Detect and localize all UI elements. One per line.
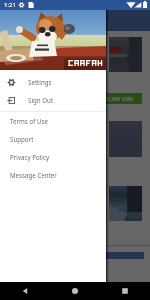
- button[interactable]: SCAN VIN: [8, 93, 142, 104]
- staticText: Terms of Use: [10, 117, 48, 125]
- button[interactable]: [109, 37, 142, 72]
- staticText: Message Center: [10, 171, 57, 179]
- button[interactable]: Settings: [0, 73, 106, 91]
- button[interactable]: [109, 186, 142, 221]
- staticText: 1:21: [4, 1, 16, 9]
- button[interactable]: Terms of Use: [10, 112, 106, 130]
- button[interactable]: Privacy Policy: [10, 148, 106, 166]
- staticText: Sign Out: [28, 96, 54, 104]
- button[interactable]: Home: [50, 282, 100, 300]
- staticText: SCAN VIN: [104, 95, 133, 103]
- button[interactable]: Message Center: [10, 166, 106, 184]
- button[interactable]: Back: [0, 282, 50, 300]
- staticText: Settings: [28, 78, 52, 86]
- button[interactable]: Recent apps: [100, 282, 150, 300]
- button[interactable]: Sign Out: [0, 91, 106, 109]
- button[interactable]: Support: [10, 130, 106, 148]
- staticText: Support: [10, 135, 34, 143]
- staticText: Privacy Policy: [10, 153, 50, 161]
